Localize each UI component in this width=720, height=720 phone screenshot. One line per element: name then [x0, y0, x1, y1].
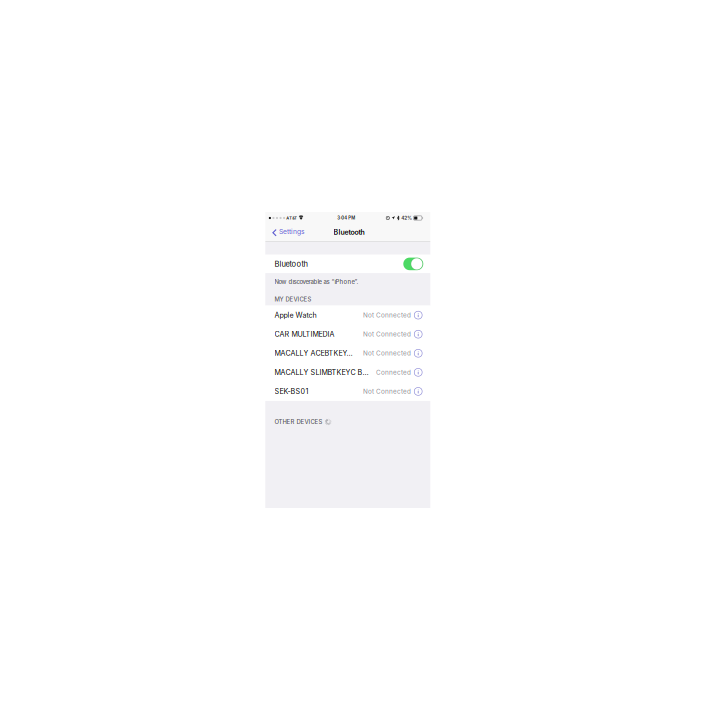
- staticText: Now discoverable as “iPhone”.: [275, 278, 359, 285]
- button[interactable]: More info about MACALLY SLIMBTKEYC B…: [411, 363, 430, 382]
- button[interactable]: Bluetooth, on: [397, 255, 430, 273]
- button[interactable]: More info about MACALLY ACEBTKEY…: [411, 344, 430, 363]
- staticText: Not Connected: [363, 388, 411, 395]
- staticText: OTHER DEVICES: [275, 418, 323, 425]
- button[interactable]: More info about CAR MULTIMEDIA: [411, 325, 430, 344]
- button[interactable]: More info about SEK-BS01: [411, 382, 430, 401]
- button[interactable]: SEK-BS01: [265, 382, 411, 401]
- button[interactable]: CAR MULTIMEDIA: [265, 325, 411, 344]
- staticText: CAR MULTIMEDIA: [275, 330, 335, 338]
- staticText: MACALLY SLIMBTKEYC B…: [275, 368, 369, 377]
- staticText: 42%: [401, 215, 412, 221]
- staticText: MACALLY ACEBTKEY…: [275, 349, 353, 358]
- button[interactable]: MACALLY ACEBTKEY…: [265, 344, 411, 363]
- staticText: Bluetooth: [334, 228, 365, 236]
- staticText: Not Connected: [363, 349, 411, 357]
- staticText: Not Connected: [363, 330, 411, 338]
- button[interactable]: MACALLY SLIMBTKEYC B…: [265, 363, 411, 382]
- staticText: SEK-BS01: [275, 387, 309, 396]
- button[interactable]: Apple Watch: [265, 306, 411, 325]
- button[interactable]: More info about Apple Watch: [411, 306, 430, 325]
- staticText: Settings: [279, 227, 305, 236]
- staticText: 3:04 PM: [337, 215, 355, 221]
- staticText: Not Connected: [363, 311, 411, 319]
- button[interactable]: Settings: [265, 224, 310, 241]
- staticText: Bluetooth: [275, 259, 308, 268]
- staticText: MY DEVICES: [275, 296, 312, 303]
- staticText: Apple Watch: [275, 311, 317, 319]
- staticText: AT&T: [286, 216, 297, 220]
- staticText: Connected: [376, 368, 411, 376]
